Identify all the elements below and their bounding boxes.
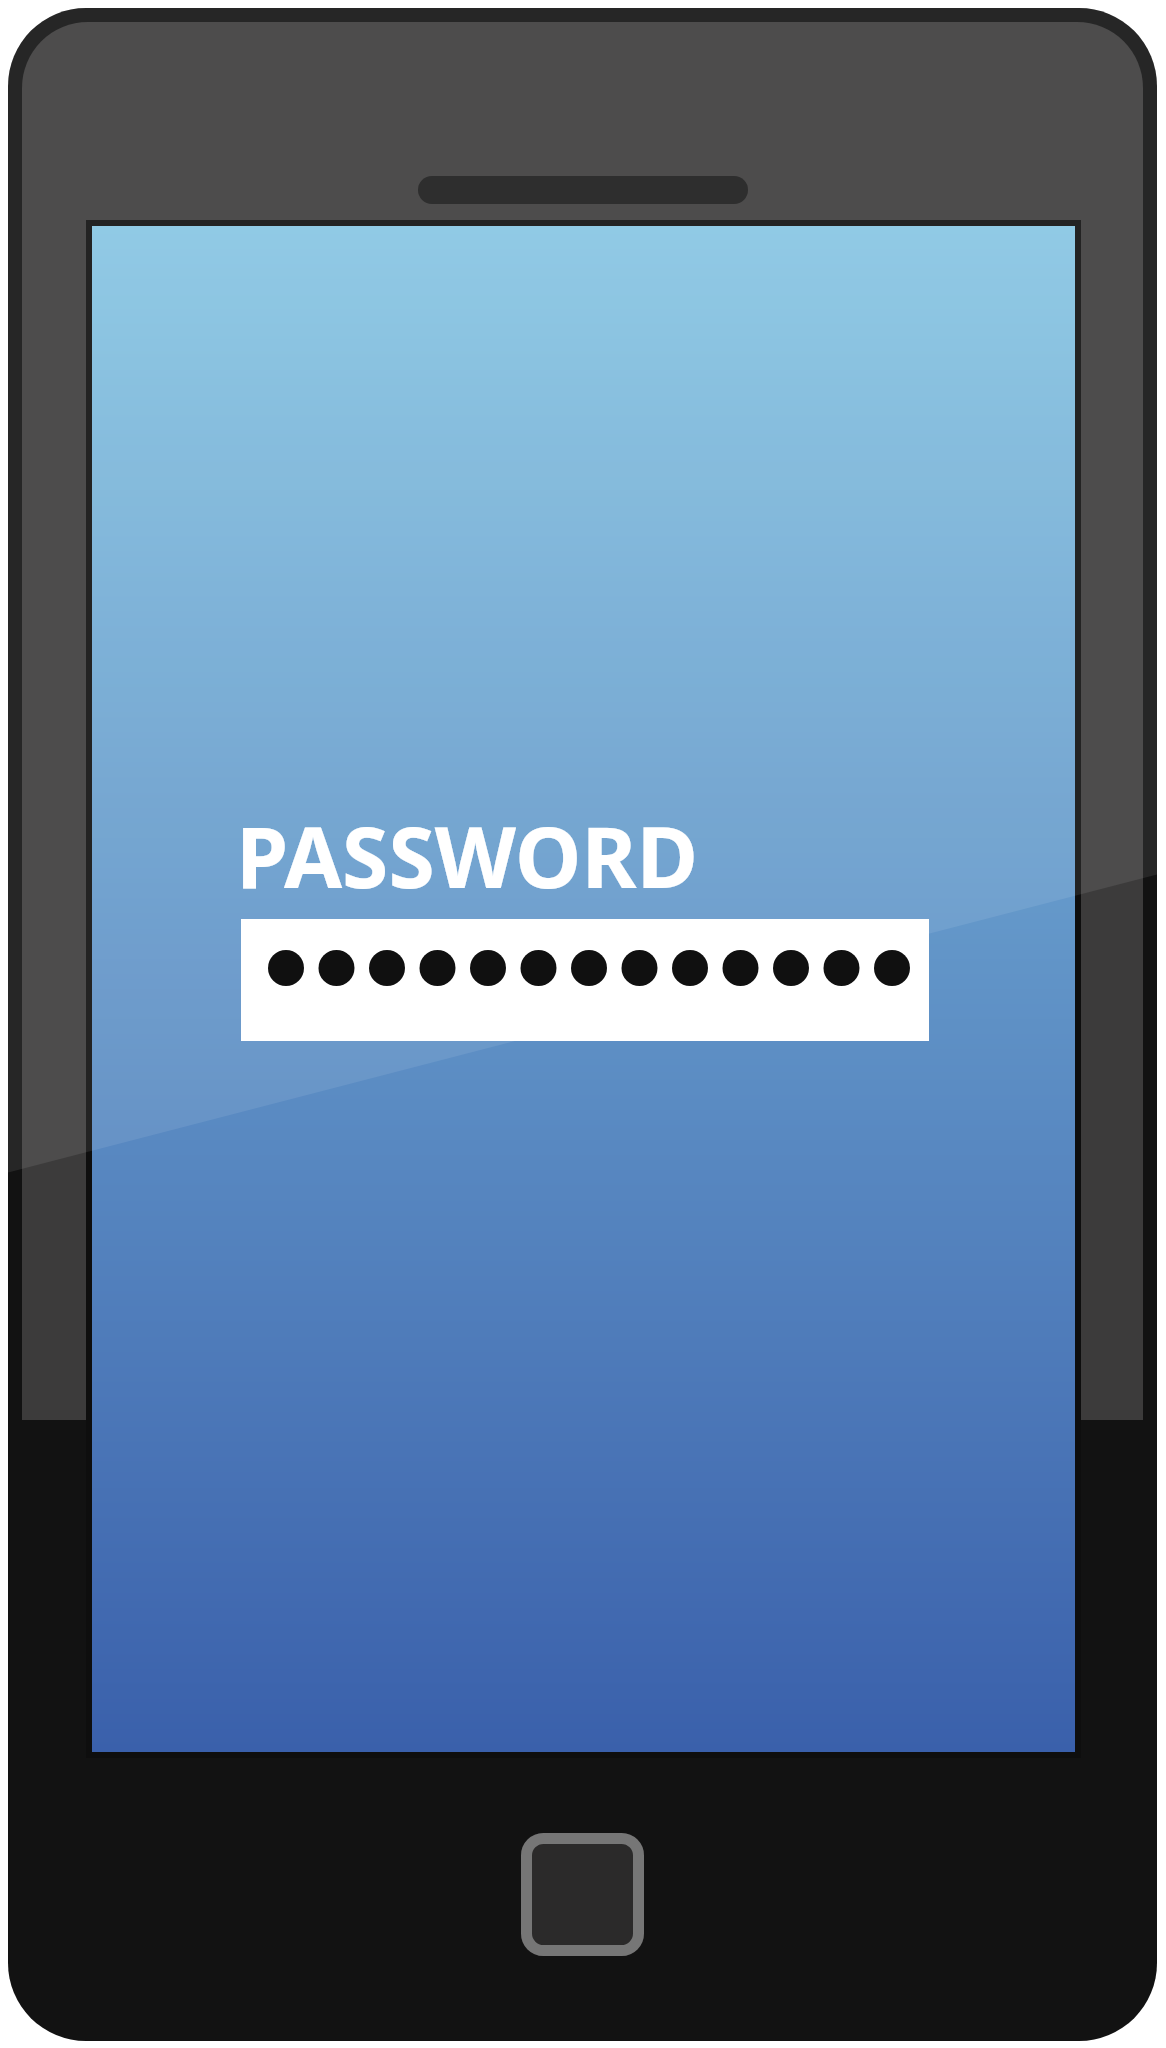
button[interactable]: Password input field <box>241 919 929 1041</box>
button[interactable]: Home <box>521 1833 644 1956</box>
